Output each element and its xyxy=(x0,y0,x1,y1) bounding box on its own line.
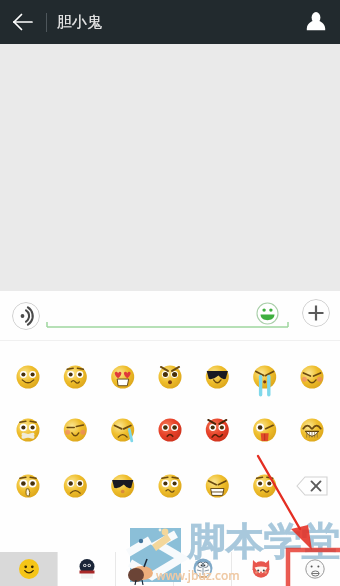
button[interactable]: Voice input xyxy=(12,302,40,330)
staticText: 胆小鬼 xyxy=(57,13,102,32)
button[interactable]: Emoji keyboard xyxy=(256,302,279,325)
button[interactable]: Sticker tab 6 xyxy=(290,552,340,586)
staticText: www.jbuz.com xyxy=(156,567,240,583)
button[interactable]: Sticker tab 4 xyxy=(174,552,231,586)
button[interactable]: Contact profile xyxy=(299,5,333,39)
staticText: 脚本学堂 xyxy=(187,518,339,566)
button[interactable]: Sticker tab 3 xyxy=(116,552,173,586)
button[interactable]: Sticker tab 5 xyxy=(232,552,289,586)
button[interactable]: Back xyxy=(6,5,40,39)
button[interactable]: Backspace xyxy=(295,474,335,498)
button[interactable]: Sticker tab 2 xyxy=(58,552,115,586)
button[interactable]: Sticker tab 1 xyxy=(0,552,57,586)
button[interactable]: More options xyxy=(302,299,330,327)
